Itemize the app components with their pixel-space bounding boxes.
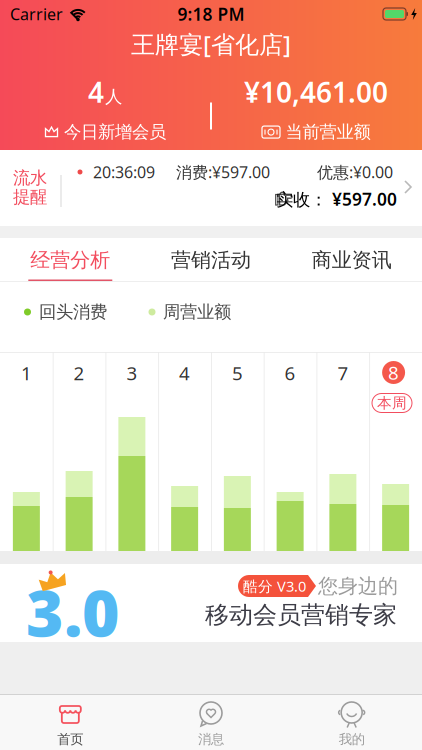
staticText: 营销活动 <box>171 248 251 272</box>
staticText: 提醒 <box>13 186 47 208</box>
staticText: 7 <box>337 361 348 385</box>
staticText: 4 <box>179 361 190 385</box>
staticText: 20:36:09 <box>93 161 155 183</box>
staticText: 实收： ¥597.00 <box>276 187 397 210</box>
staticText: 酷分 V3.0 <box>243 576 306 596</box>
staticText: 3 <box>126 361 137 385</box>
staticText: 移动会员营销专家 <box>205 600 397 630</box>
staticText: 王牌宴[省化店] <box>131 28 291 60</box>
button[interactable]: 首页 <box>0 695 141 747</box>
staticText: 今日新增会员 <box>64 121 166 143</box>
staticText: 本周 <box>377 394 407 412</box>
staticText: 周营业额 <box>163 301 231 323</box>
staticText: Carrier <box>10 3 63 25</box>
staticText: 9:18 PM <box>177 2 244 25</box>
button[interactable]: 消息 <box>141 695 281 747</box>
staticText: ¥10,461.00 <box>244 73 388 110</box>
button[interactable]: 我的 <box>281 695 422 747</box>
staticText: 人 <box>105 86 122 107</box>
button[interactable]: 营销活动 <box>141 238 281 282</box>
staticText: 当前营业额 <box>285 121 370 143</box>
staticText: 6 <box>285 361 296 385</box>
staticText: 消费:¥597.00 <box>176 161 270 183</box>
staticText: 4 <box>88 73 104 110</box>
staticText: 8 <box>388 360 399 385</box>
button[interactable]: 经营分析 <box>0 238 141 282</box>
staticText: 5 <box>232 361 243 385</box>
staticText: 您身边的 <box>318 574 398 598</box>
staticText: 2 <box>74 361 85 385</box>
staticText: 1 <box>21 361 32 385</box>
staticText: 我的 <box>339 731 365 747</box>
button[interactable]: 流水 <box>0 150 422 226</box>
staticText: 3.0 <box>26 569 120 654</box>
staticText: 回头消费 <box>39 301 107 323</box>
button[interactable]: 商业资讯 <box>281 238 422 282</box>
staticText: 流水 <box>13 167 47 189</box>
staticText: 商业资讯 <box>312 248 392 272</box>
staticText: 消息 <box>198 731 224 747</box>
staticText: 经营分析 <box>30 248 110 272</box>
staticText: 首页 <box>57 731 83 747</box>
staticText: 优惠:¥0.00 <box>317 161 393 183</box>
